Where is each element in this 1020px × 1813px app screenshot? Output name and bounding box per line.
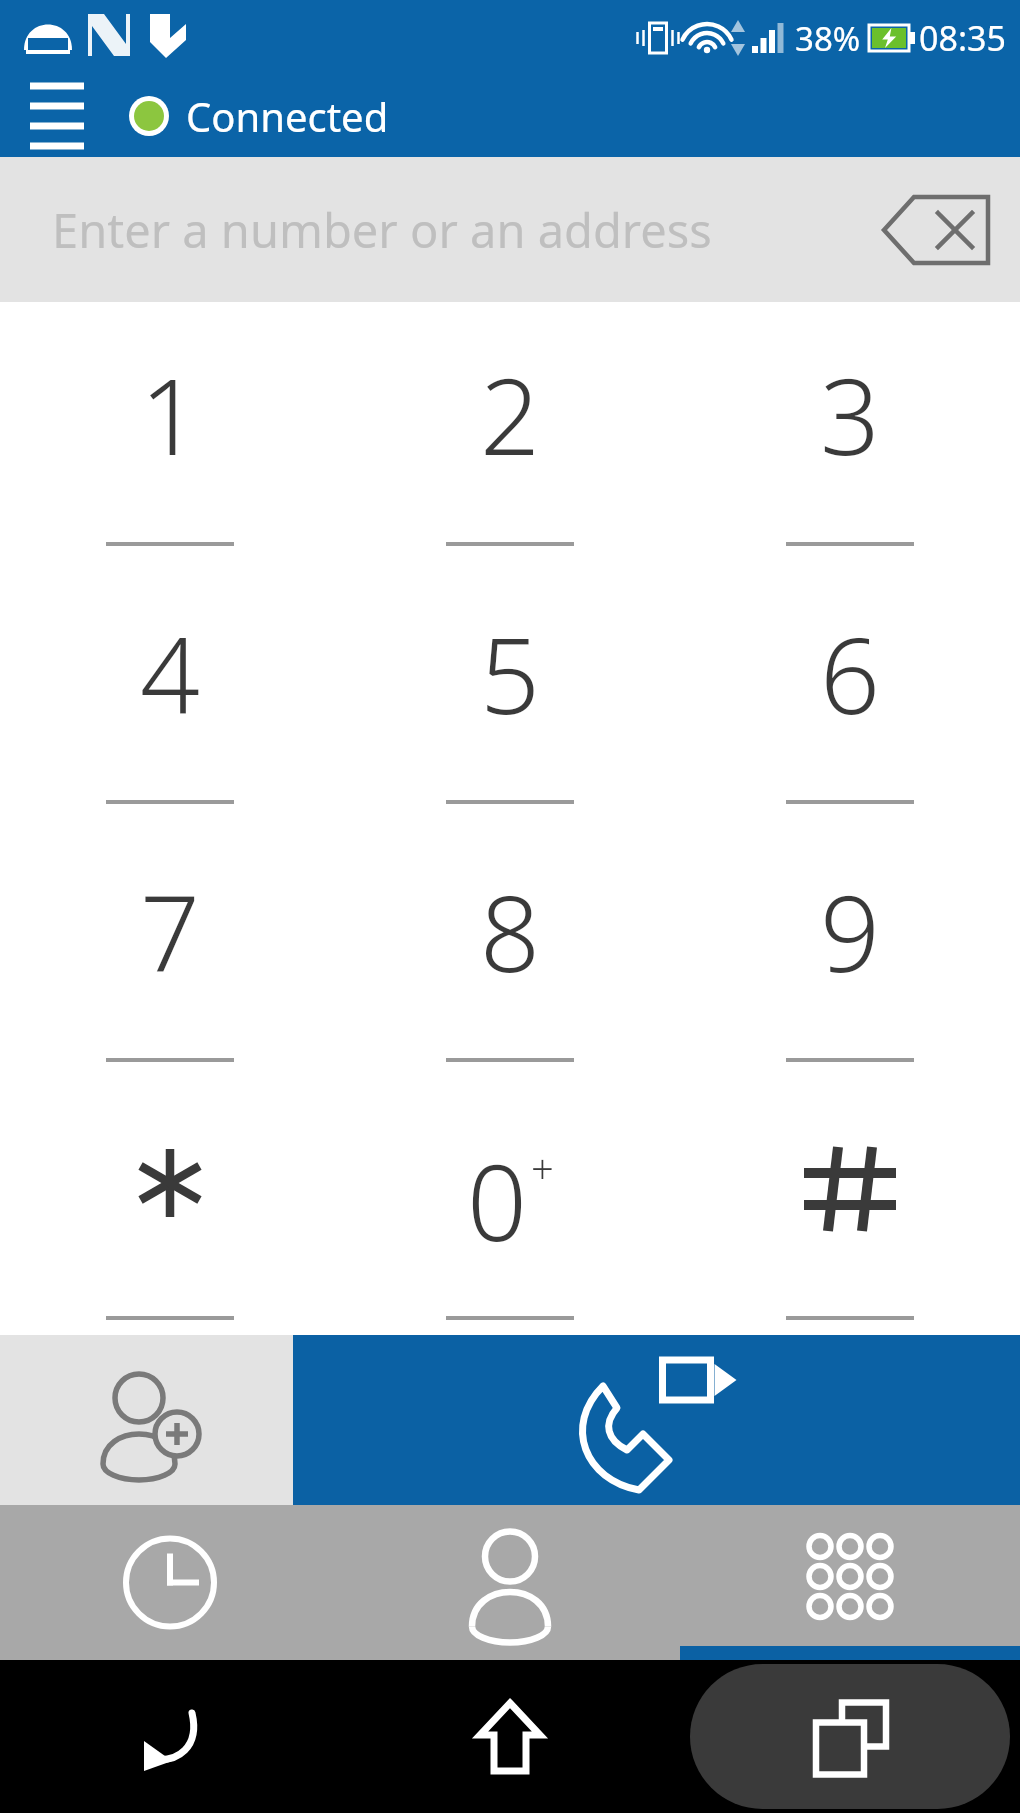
button[interactable]: 0 xyxy=(340,1077,680,1335)
staticText: 6 xyxy=(820,602,880,745)
button[interactable]: Recent calls xyxy=(0,1505,340,1660)
button[interactable]: Home xyxy=(340,1660,680,1813)
staticText: 2 xyxy=(480,343,540,486)
button[interactable]: Backspace xyxy=(876,185,996,275)
button[interactable] xyxy=(0,1077,340,1335)
button[interactable]: 3 xyxy=(680,302,1020,561)
button[interactable]: 8 xyxy=(340,819,680,1077)
button[interactable]: 7 xyxy=(0,819,340,1077)
staticText: Enter a number or an address xyxy=(52,198,712,262)
staticText: 8 xyxy=(480,860,540,1003)
button[interactable] xyxy=(680,1077,1020,1335)
staticText: Connected xyxy=(186,89,389,143)
button[interactable]: 5 xyxy=(340,561,680,819)
button[interactable]: Contacts xyxy=(340,1505,680,1660)
button[interactable]: Add contact xyxy=(0,1335,293,1505)
button[interactable]: 4 xyxy=(0,561,340,819)
staticText: 9 xyxy=(820,860,880,1003)
button[interactable]: Connected xyxy=(128,89,389,143)
button[interactable]: Dialpad xyxy=(680,1505,1020,1660)
staticText: 5 xyxy=(480,602,540,745)
button[interactable]: 6 xyxy=(680,561,1020,819)
button[interactable]: 1 xyxy=(0,302,340,561)
staticText: 08:35 xyxy=(919,15,1006,61)
button[interactable]: Back xyxy=(0,1660,340,1813)
button[interactable]: Video call xyxy=(293,1335,1020,1505)
button[interactable]: 2 xyxy=(340,302,680,561)
button[interactable]: 9 xyxy=(680,819,1020,1077)
staticText: 7 xyxy=(140,860,200,1003)
staticText: + xyxy=(531,1141,554,1195)
staticText: 1 xyxy=(140,343,200,486)
staticText: 3 xyxy=(820,343,880,486)
button[interactable]: Recent apps xyxy=(680,1660,1020,1813)
staticText: 4 xyxy=(140,602,200,745)
button[interactable]: Open navigation menu xyxy=(22,81,92,151)
staticText: 38% xyxy=(795,16,861,61)
staticText: 0 xyxy=(467,1129,527,1249)
